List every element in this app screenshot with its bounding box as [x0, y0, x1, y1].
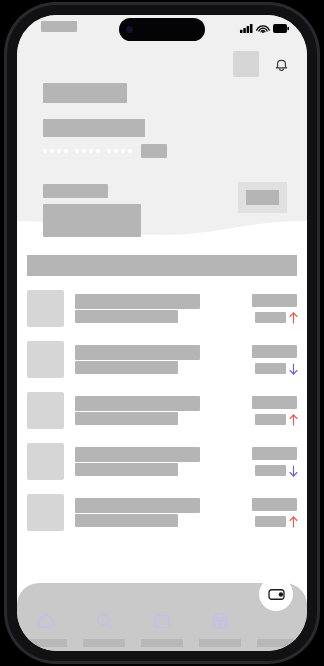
button[interactable]	[27, 290, 297, 327]
button[interactable]	[238, 182, 287, 213]
button[interactable]: Wallet	[249, 610, 307, 647]
button[interactable]: Rewards	[191, 610, 249, 647]
button[interactable]: Notifications	[269, 52, 293, 76]
button[interactable]: Calendar	[133, 610, 191, 647]
button[interactable]	[27, 443, 297, 480]
button[interactable]: Wallet	[259, 577, 293, 611]
button[interactable]: Search	[75, 610, 133, 647]
button[interactable]	[27, 392, 297, 429]
button[interactable]	[27, 341, 297, 378]
button[interactable]	[27, 494, 297, 531]
button[interactable]: Home	[17, 610, 75, 647]
